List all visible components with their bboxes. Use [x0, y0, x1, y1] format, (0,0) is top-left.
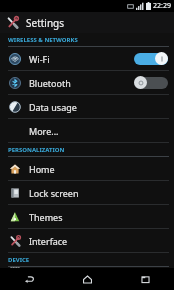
button[interactable]: Home — [58, 268, 116, 290]
staticText: More... — [29, 125, 59, 137]
staticText: Bluetooth — [29, 77, 71, 89]
staticText: PERSONALIZATION — [8, 146, 65, 154]
staticText: Home — [29, 163, 55, 175]
staticText: Settings — [26, 16, 65, 30]
button[interactable]: Recent apps — [116, 268, 174, 290]
staticText: 22:29 — [153, 1, 171, 11]
staticText: Interface — [29, 235, 68, 247]
staticText: Themes — [29, 211, 63, 223]
button[interactable]: Sound — [0, 267, 174, 268]
staticText: DEVICE — [8, 256, 30, 264]
button[interactable]: Data usage — [0, 95, 174, 118]
button[interactable]: Wi-Fi — [0, 47, 174, 70]
button[interactable]: Back — [0, 268, 58, 290]
staticText: Data usage — [29, 101, 77, 113]
staticText: Wi-Fi — [29, 53, 50, 65]
button[interactable]: Bluetooth — [0, 71, 174, 94]
button[interactable]: More... — [0, 119, 174, 142]
staticText: Lock screen — [29, 187, 79, 199]
button[interactable]: Lock screen — [0, 181, 174, 204]
button[interactable]: Interface — [0, 229, 174, 252]
staticText: WIRELESS & NETWORKS — [8, 36, 78, 44]
button[interactable]: Toggle off — [134, 76, 168, 89]
button[interactable]: Themes — [0, 205, 174, 228]
button[interactable]: Home — [0, 157, 174, 180]
button[interactable]: Toggle on — [134, 52, 168, 65]
